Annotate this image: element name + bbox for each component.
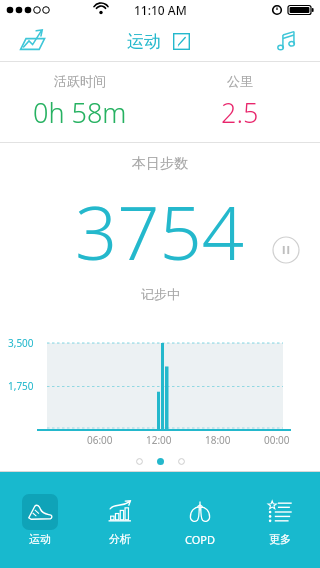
button[interactable]: 更多 [240,472,320,568]
staticText: 记步中 [141,286,180,302]
staticText: 活跃时间 [54,73,106,89]
button[interactable]: 运动 [0,472,80,568]
staticText: COPD [185,532,216,547]
staticText: 0h 58m [33,94,127,131]
button[interactable]: Edit [168,28,194,54]
button[interactable]: COPD [160,472,240,568]
button[interactable]: 公里 [160,62,320,142]
staticText: 2.5 [221,94,259,131]
staticText: 06:00 [87,433,113,447]
button[interactable]: Page [136,458,143,465]
button[interactable]: Music [268,22,306,60]
staticText: 更多 [269,532,291,546]
staticText: 运动 [127,31,161,52]
staticText: 本日步数 [132,155,188,173]
staticText: 11:10 AM [134,2,187,18]
button[interactable]: Page [157,458,164,465]
button[interactable]: Page [178,458,185,465]
staticText: 18:00 [205,433,231,447]
staticText: 12:00 [146,433,172,447]
staticText: 分析 [109,532,131,546]
button[interactable]: 分析 [80,472,160,568]
staticText: 公里 [227,73,253,89]
staticText: 1,750 [8,379,34,393]
staticText: 3,500 [8,336,34,350]
button[interactable]: Trends [12,21,52,61]
staticText: 00:00 [264,433,290,447]
staticText: 3754 [75,181,245,282]
button[interactable]: 活跃时间 [0,62,160,142]
button[interactable]: Pause [272,236,300,264]
staticText: 运动 [29,532,51,546]
